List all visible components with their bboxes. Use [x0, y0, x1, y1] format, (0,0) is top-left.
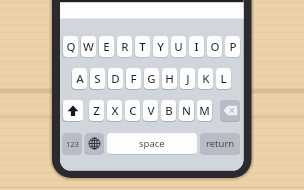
button[interactable]: L [216, 68, 231, 89]
staticText: 123 [66, 139, 79, 149]
button[interactable]: T [135, 36, 150, 57]
staticText: C [129, 103, 137, 119]
button[interactable]: B [161, 100, 176, 121]
button[interactable]: Q [63, 36, 78, 57]
button[interactable] [63, 100, 83, 121]
staticText: E [103, 39, 110, 55]
staticText: O [210, 39, 220, 55]
staticText: P [229, 39, 237, 55]
button[interactable]: W [81, 36, 96, 57]
button[interactable]: V [143, 100, 158, 121]
staticText: V [147, 103, 155, 119]
button[interactable]: S [90, 68, 105, 89]
button[interactable]: I [189, 36, 204, 57]
staticText: space [139, 137, 165, 150]
staticText: N [182, 103, 191, 119]
staticText: Q [66, 39, 76, 55]
button[interactable]: O [207, 36, 222, 57]
button[interactable]: return [200, 133, 240, 154]
staticText: L [220, 71, 227, 87]
button[interactable]: C [125, 100, 140, 121]
staticText: U [174, 39, 183, 55]
button[interactable]: U [171, 36, 186, 57]
staticText: G [147, 71, 156, 87]
staticText: K [202, 71, 210, 87]
staticText: W [83, 39, 94, 55]
button[interactable]: F [126, 68, 141, 89]
button[interactable]: K [198, 68, 213, 89]
button[interactable]: R [117, 36, 132, 57]
button[interactable]: D [108, 68, 123, 89]
button[interactable]: 123 [63, 133, 82, 154]
button[interactable]: Z [89, 100, 104, 121]
staticText: Z [93, 103, 100, 119]
staticText: J [186, 71, 190, 87]
staticText: Y [157, 39, 164, 55]
button[interactable] [220, 100, 240, 121]
button[interactable]: E [99, 36, 114, 57]
staticText: F [130, 71, 137, 87]
button[interactable]: P [225, 36, 240, 57]
staticText: I [194, 39, 199, 55]
staticText: A [76, 71, 84, 87]
staticText: R [121, 39, 129, 55]
staticText: D [111, 71, 120, 87]
staticText: H [165, 71, 174, 87]
button[interactable]: space [107, 133, 197, 154]
staticText: T [139, 39, 146, 55]
button[interactable]: H [162, 68, 177, 89]
staticText: M [199, 103, 210, 119]
staticText: X [111, 103, 119, 119]
button[interactable]: A [72, 68, 87, 89]
button[interactable]: M [197, 100, 212, 121]
button[interactable]: J [180, 68, 195, 89]
button[interactable]: G [144, 68, 159, 89]
staticText: return [206, 137, 235, 150]
button[interactable]: N [179, 100, 194, 121]
button[interactable] [85, 133, 104, 154]
button[interactable]: X [107, 100, 122, 121]
staticText: B [165, 103, 173, 119]
button[interactable]: Y [153, 36, 168, 57]
staticText: S [94, 71, 101, 87]
